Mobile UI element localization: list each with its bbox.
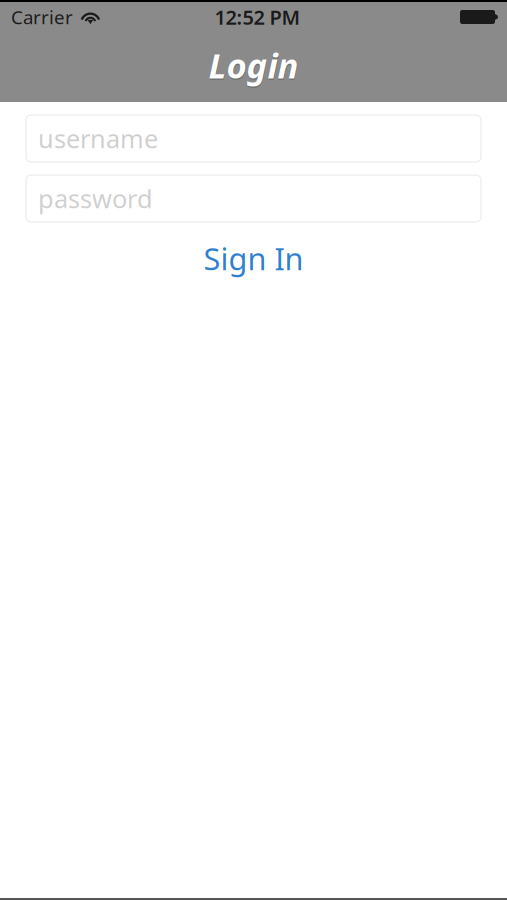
staticText: Login [209,43,299,89]
button[interactable]: Sign In [191,233,315,284]
staticText: Login [208,42,298,88]
staticText: 12:52 PM [214,4,300,30]
staticText: Sign In [203,238,303,279]
button[interactable]: username [26,115,481,162]
button[interactable]: password [26,175,481,222]
staticText: password [38,182,153,215]
staticText: Carrier [11,5,73,29]
staticText: username [38,122,158,155]
